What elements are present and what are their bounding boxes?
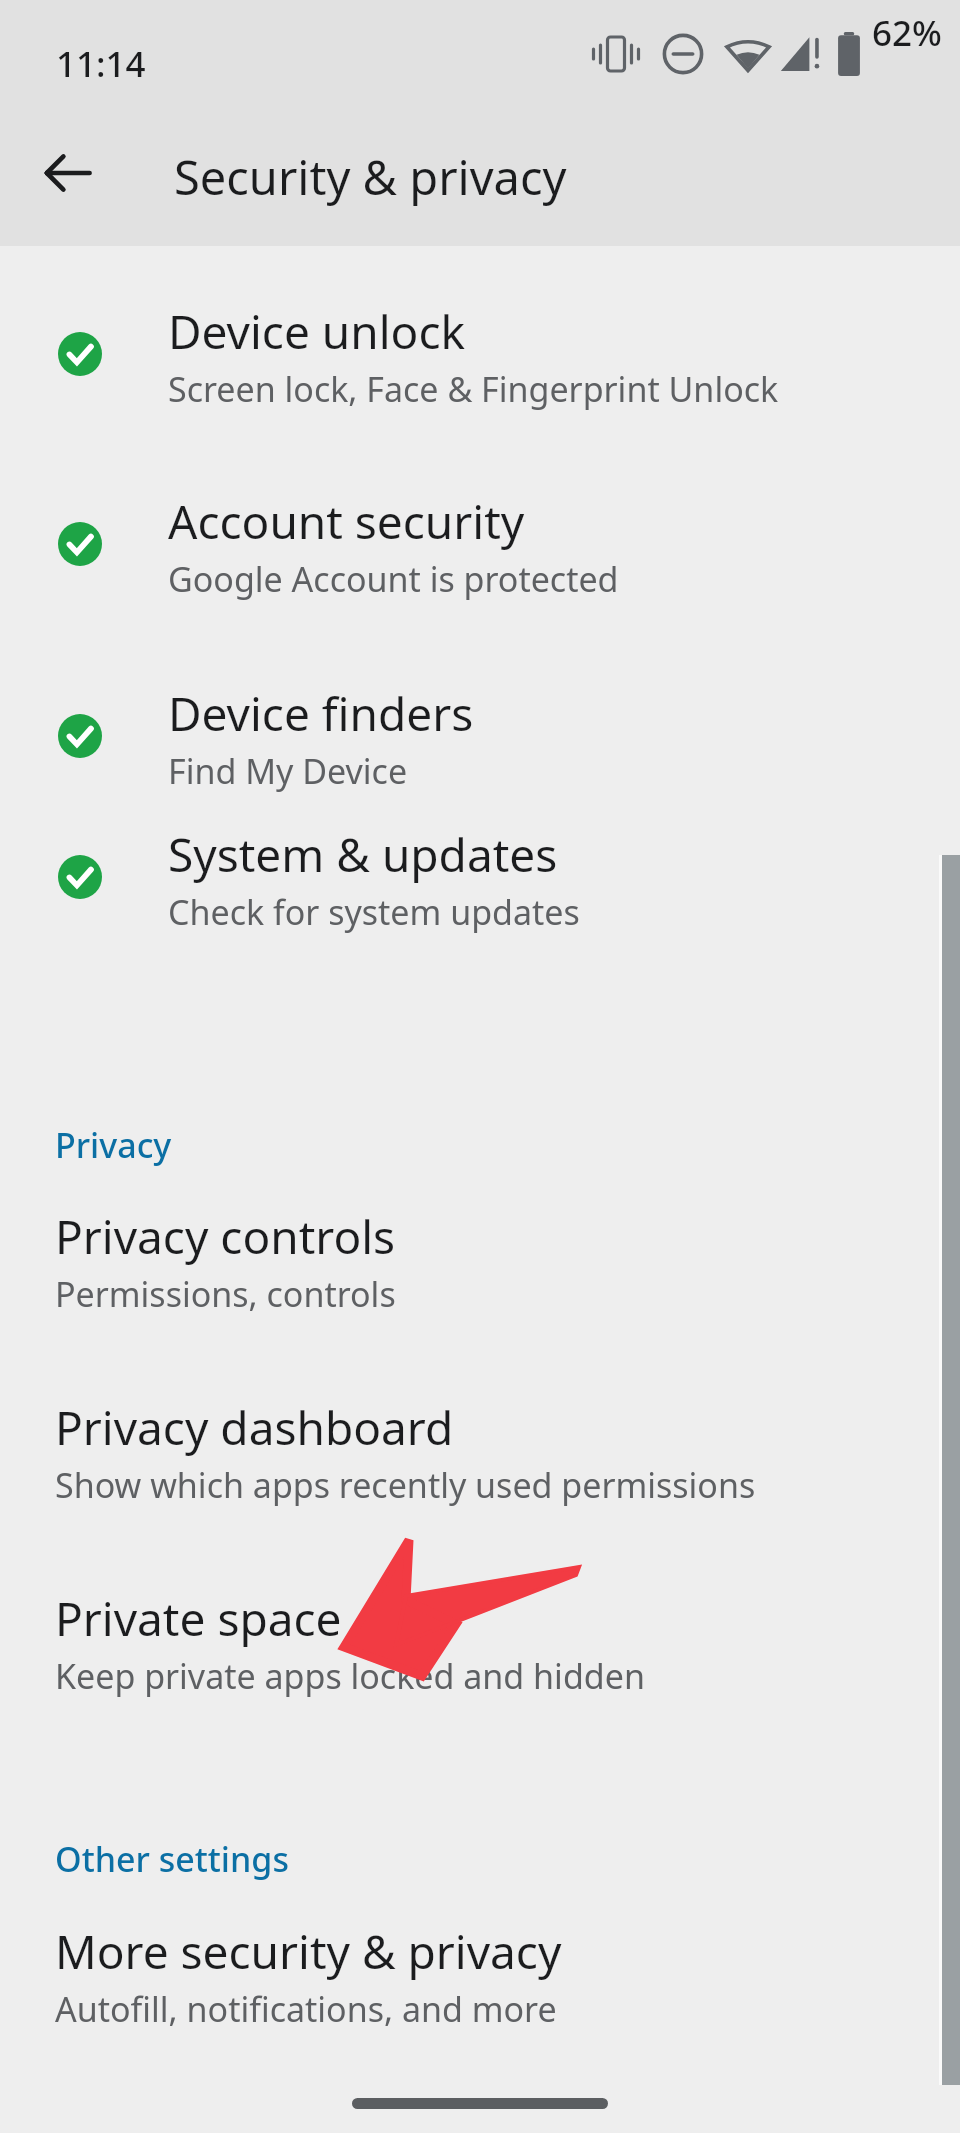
staticText: Device finders bbox=[168, 682, 474, 745]
button[interactable]: More security & privacy bbox=[0, 1890, 960, 2062]
staticText: Private space bbox=[55, 1587, 342, 1650]
staticText: Other settings bbox=[55, 1836, 289, 1882]
staticText: 62% bbox=[872, 9, 942, 57]
staticText: Privacy controls bbox=[55, 1205, 396, 1268]
button[interactable]: Back bbox=[20, 125, 116, 221]
staticText: Permissions, controls bbox=[55, 1271, 396, 1317]
staticText: Device unlock bbox=[168, 300, 466, 363]
button[interactable]: Device unlock bbox=[0, 270, 960, 442]
button[interactable]: Privacy dashboard bbox=[0, 1366, 960, 1538]
staticText: Show which apps recently used permission… bbox=[55, 1462, 756, 1508]
staticText: Google Account is protected bbox=[168, 556, 619, 602]
staticText: System & updates bbox=[168, 823, 558, 886]
button[interactable]: Account security bbox=[0, 460, 960, 632]
button[interactable]: Privacy controls bbox=[0, 1175, 960, 1347]
staticText: Check for system updates bbox=[168, 889, 580, 935]
button[interactable]: Device finders bbox=[0, 652, 960, 824]
staticText: Privacy bbox=[55, 1122, 172, 1168]
staticText: Privacy dashboard bbox=[55, 1396, 454, 1459]
button[interactable]: System & updates bbox=[0, 793, 960, 965]
staticText: Find My Device bbox=[168, 748, 408, 794]
staticText: Screen lock, Face & Fingerprint Unlock bbox=[168, 366, 779, 412]
button[interactable]: Private space bbox=[0, 1557, 960, 1729]
staticText: Keep private apps locked and hidden bbox=[55, 1653, 645, 1699]
staticText: Autofill, notifications, and more bbox=[55, 1986, 557, 2032]
staticText: 11:14 bbox=[56, 40, 146, 88]
staticText: More security & privacy bbox=[55, 1920, 562, 1983]
staticText: Security & privacy bbox=[174, 145, 567, 209]
staticText: Account security bbox=[168, 490, 525, 553]
